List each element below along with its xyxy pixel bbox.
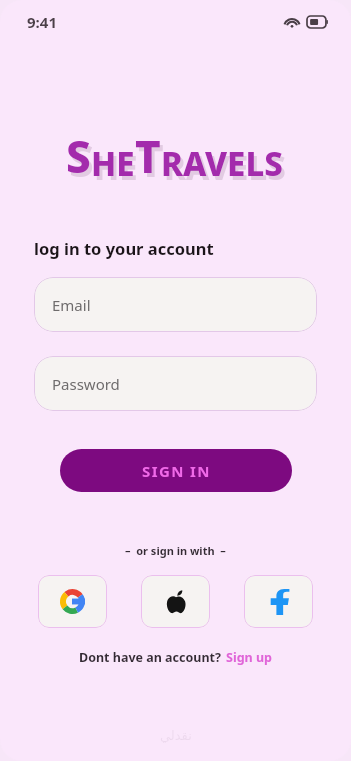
staticText: 9:41 [27, 12, 57, 32]
button[interactable]: Sign in with Apple [141, 575, 210, 628]
staticText: HE [91, 141, 135, 186]
staticText: Password [52, 374, 120, 394]
staticText: RAVELS [161, 141, 283, 186]
staticText: Dont have an account? [79, 649, 221, 666]
staticText: T [135, 126, 161, 186]
staticText: S [66, 126, 91, 186]
staticText: SIGN IN [142, 461, 211, 481]
staticText: HE [94, 145, 138, 190]
staticText: log in to your account [34, 237, 214, 259]
button[interactable]: Email [34, 277, 317, 332]
staticText: نقدلي [160, 728, 192, 743]
button[interactable]: Password [34, 356, 317, 411]
staticText: RAVELS [164, 145, 286, 190]
staticText: Sign up [226, 649, 272, 666]
button[interactable]: Sign up [226, 649, 272, 666]
button[interactable]: Sign in with Google [38, 575, 107, 628]
staticText: T [138, 130, 164, 190]
button[interactable]: SIGN IN [60, 449, 292, 492]
button[interactable]: Sign in with Facebook [244, 575, 313, 628]
staticText: S [69, 130, 94, 190]
staticText: Email [52, 295, 91, 315]
staticText: – or sign in with – [125, 543, 226, 558]
